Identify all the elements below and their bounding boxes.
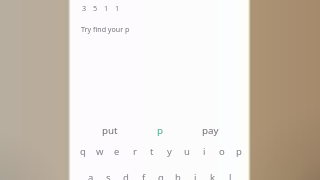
staticText: u [184,145,190,158]
staticText: r [133,145,137,158]
button[interactable]: j [187,166,204,180]
button[interactable]: put [85,120,135,141]
button[interactable]: k [204,166,221,180]
button[interactable]: a [82,166,99,180]
staticText: g [158,171,164,180]
button[interactable]: r [126,140,143,163]
staticText: w [96,145,104,158]
button[interactable]: l [222,166,239,180]
staticText: p [236,145,242,158]
staticText: 3 [82,3,87,13]
staticText: y [167,145,172,158]
button[interactable]: y [161,140,178,163]
staticText: o [219,145,225,158]
button[interactable]: p [135,120,185,141]
staticText: i [203,145,206,158]
staticText: Try find your p [81,24,130,34]
button[interactable]: h [169,166,186,180]
staticText: s [106,171,111,180]
button[interactable]: u [178,140,195,163]
button[interactable]: e [108,140,125,163]
button[interactable]: w [91,140,108,163]
staticText: a [88,171,94,180]
staticText: l [229,171,232,180]
staticText: f [142,171,146,180]
button[interactable]: pay [185,120,235,141]
staticText: 1 [104,3,109,13]
staticText: 5 [93,3,98,13]
button[interactable]: t [143,140,160,163]
button[interactable]: q [74,140,91,163]
staticText: put [102,124,118,137]
button[interactable]: d [117,166,134,180]
staticText: k [210,171,216,180]
staticText: d [123,171,129,180]
button[interactable]: p [230,140,247,163]
button[interactable]: f [135,166,152,180]
staticText: pay [202,124,219,137]
staticText: j [194,171,197,180]
staticText: t [150,145,154,158]
button[interactable]: i [196,140,213,163]
staticText: p [157,124,164,137]
staticText: q [80,145,86,158]
button[interactable]: o [213,140,230,163]
staticText: e [114,145,120,158]
staticText: 1 [115,3,120,13]
button[interactable]: g [152,166,169,180]
staticText: h [175,171,181,180]
button[interactable]: s [100,166,117,180]
